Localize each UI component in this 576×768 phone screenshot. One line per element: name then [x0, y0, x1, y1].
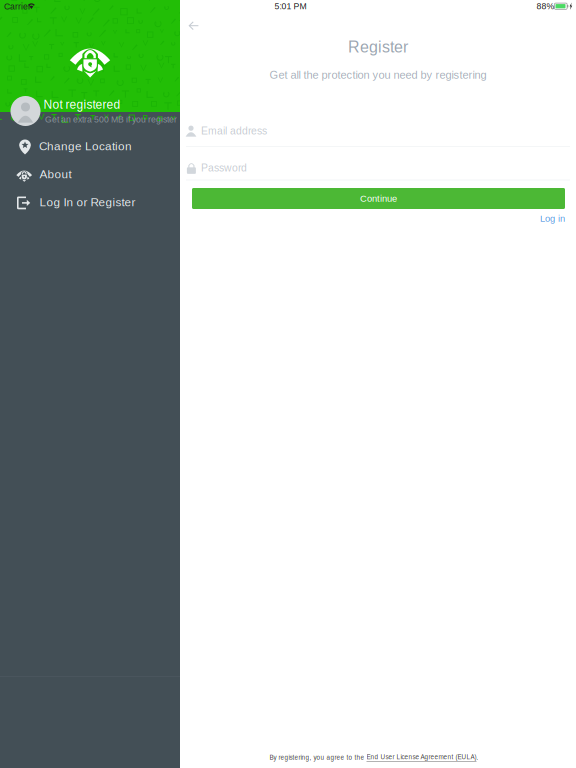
staticText: Get an extra 500 MB if you register [45, 115, 177, 124]
button[interactable] [0, 161, 180, 189]
staticText: About [39, 168, 71, 181]
staticText: Log in [540, 213, 565, 224]
button[interactable]: Back [173, 9, 213, 43]
button[interactable]: Continue [192, 188, 565, 209]
staticText: Email address [201, 125, 267, 137]
staticText: Get all the protection you need by regis… [269, 69, 486, 81]
button[interactable] [0, 133, 180, 161]
button[interactable]: End User License Agreement (EULA) [366, 753, 476, 762]
button[interactable] [180, 114, 576, 148]
staticText: Change Location [39, 140, 132, 153]
staticText: Carrier [4, 2, 31, 11]
staticText: Continue [360, 193, 397, 204]
staticText: 88% [536, 1, 554, 11]
staticText: Register [348, 38, 408, 56]
staticText: . [476, 754, 478, 761]
staticText: Password [201, 162, 247, 174]
staticText: By registering, you agree to the [269, 754, 366, 761]
staticText: 5:01 PM [274, 1, 306, 11]
staticText: End User License Agreement (EULA) [366, 753, 476, 760]
button[interactable] [0, 189, 180, 217]
button[interactable] [180, 151, 576, 185]
button[interactable] [0, 88, 180, 134]
staticText: Not registered [43, 98, 120, 111]
button[interactable]: Log in [525, 212, 565, 225]
staticText: Log In or Register [39, 196, 135, 209]
